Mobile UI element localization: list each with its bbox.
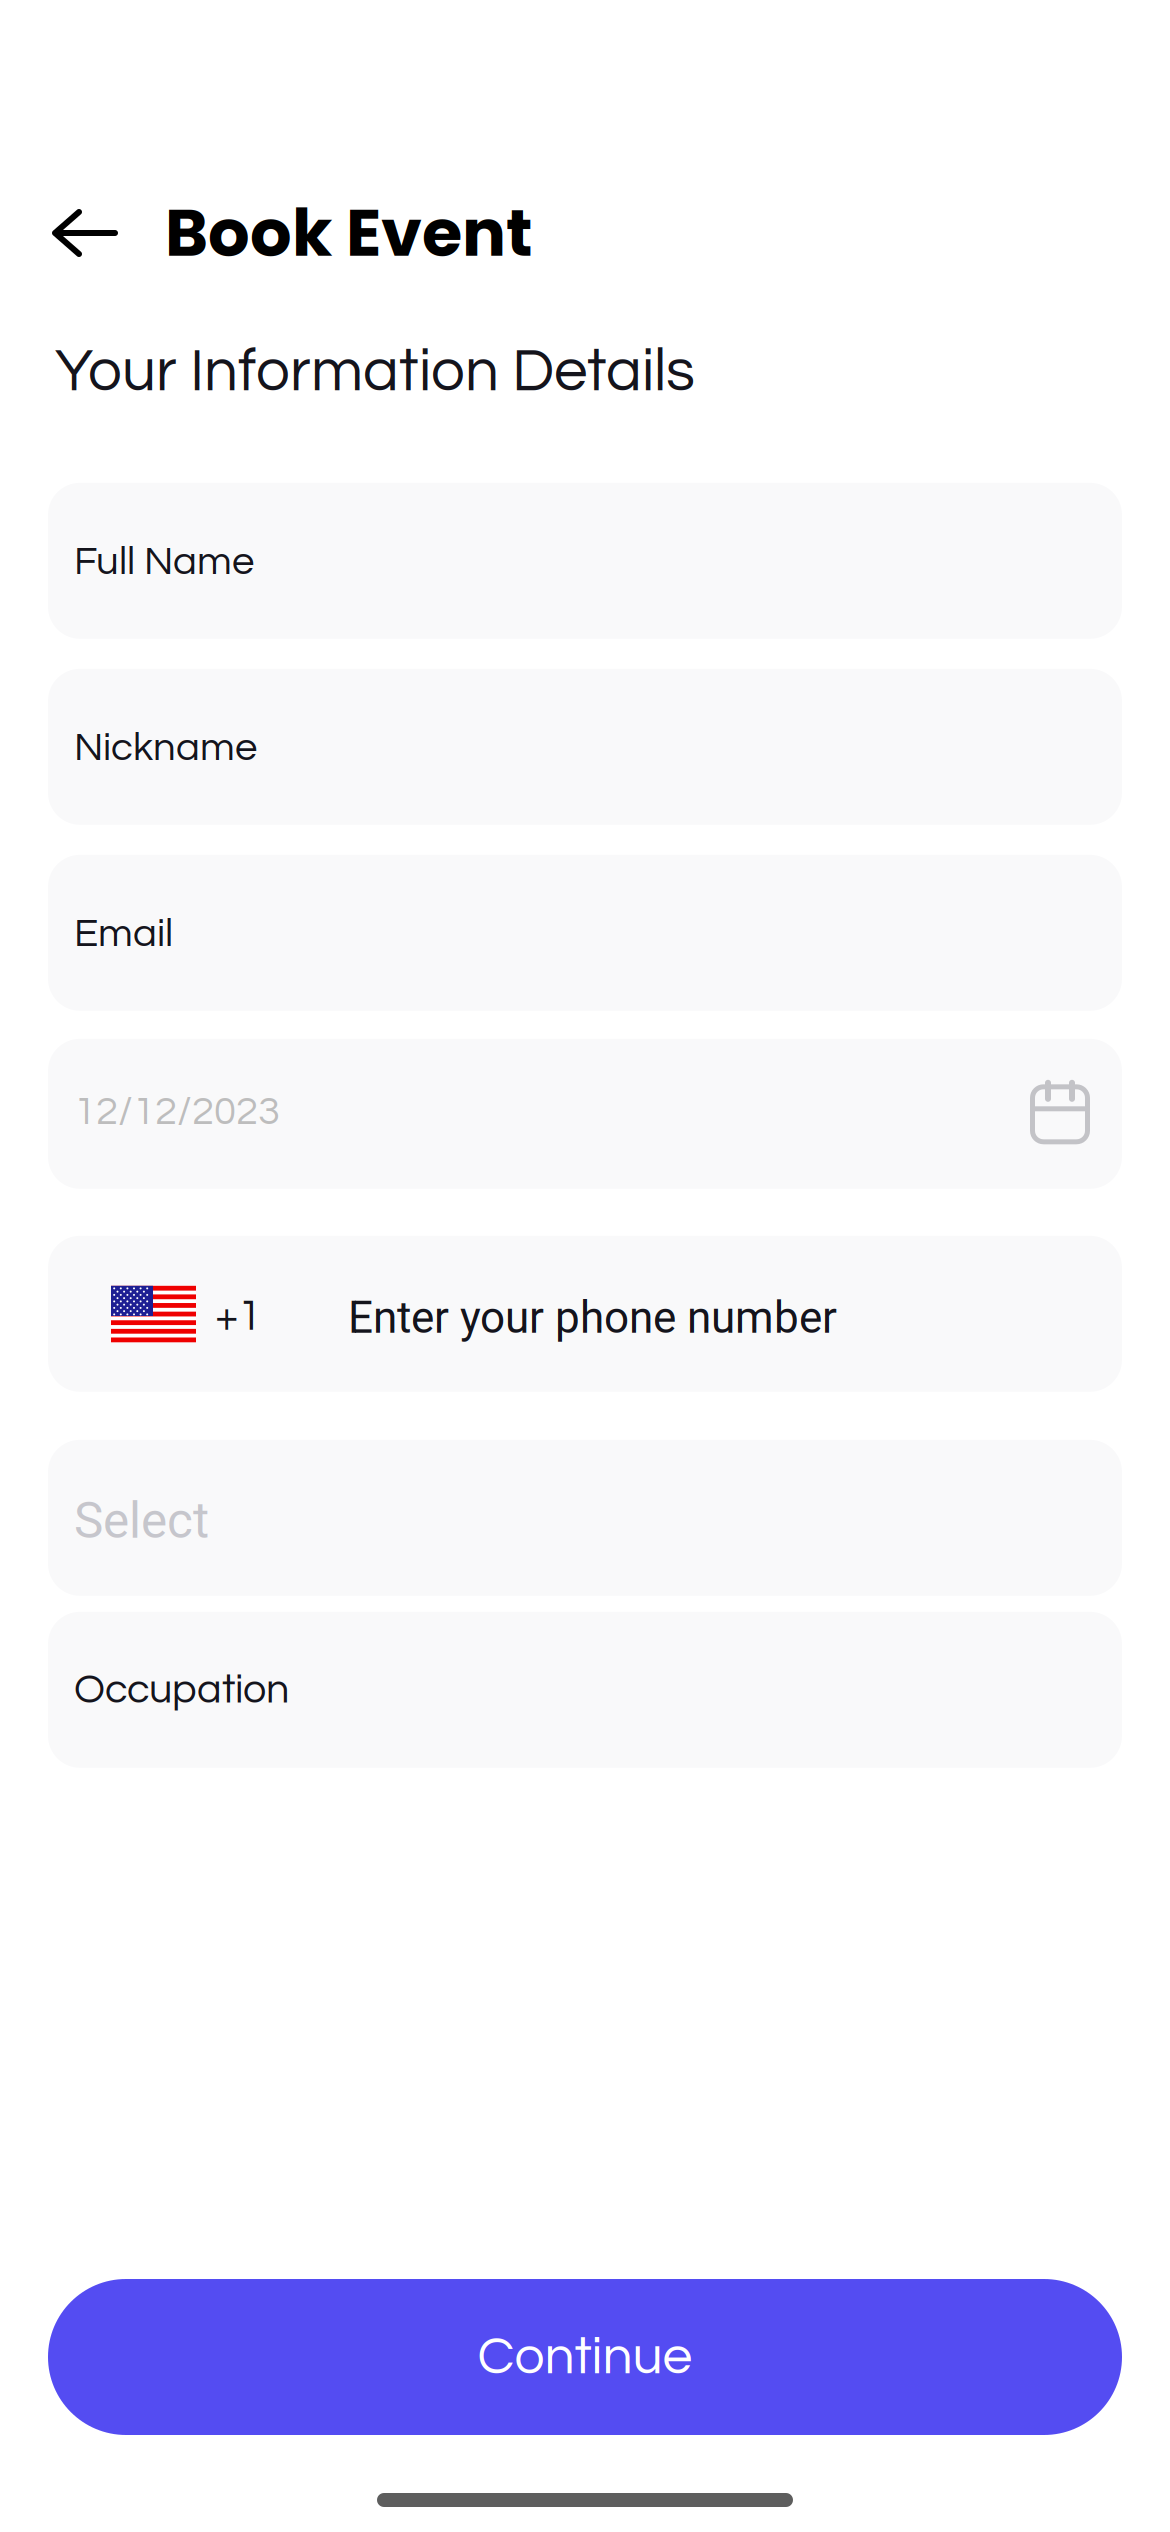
button[interactable]: Email xyxy=(48,855,1122,1011)
button[interactable]: Back xyxy=(0,185,165,281)
staticText: Nickname xyxy=(74,727,257,768)
button[interactable]: +1 xyxy=(48,1236,1122,1392)
button[interactable]: Full Name xyxy=(48,483,1122,639)
staticText: Occupation xyxy=(74,1668,289,1711)
staticText: 12/12/2023 xyxy=(74,1091,280,1132)
staticText: Book Event xyxy=(165,187,533,279)
button[interactable]: Continue xyxy=(48,2279,1122,2435)
staticText: +1 xyxy=(215,1295,261,1339)
button[interactable]: Occupation xyxy=(48,1612,1122,1768)
staticText: Enter your phone number xyxy=(348,1292,837,1344)
staticText: Email xyxy=(74,913,173,954)
staticText: Continue xyxy=(477,2329,692,2384)
button[interactable]: Select xyxy=(48,1440,1122,1596)
staticText: Your Information Details xyxy=(55,341,695,403)
button[interactable]: 12/12/2023 xyxy=(48,1039,1122,1189)
staticText: Full Name xyxy=(74,541,254,582)
button[interactable]: Nickname xyxy=(48,669,1122,825)
staticText: Select xyxy=(74,1492,209,1550)
